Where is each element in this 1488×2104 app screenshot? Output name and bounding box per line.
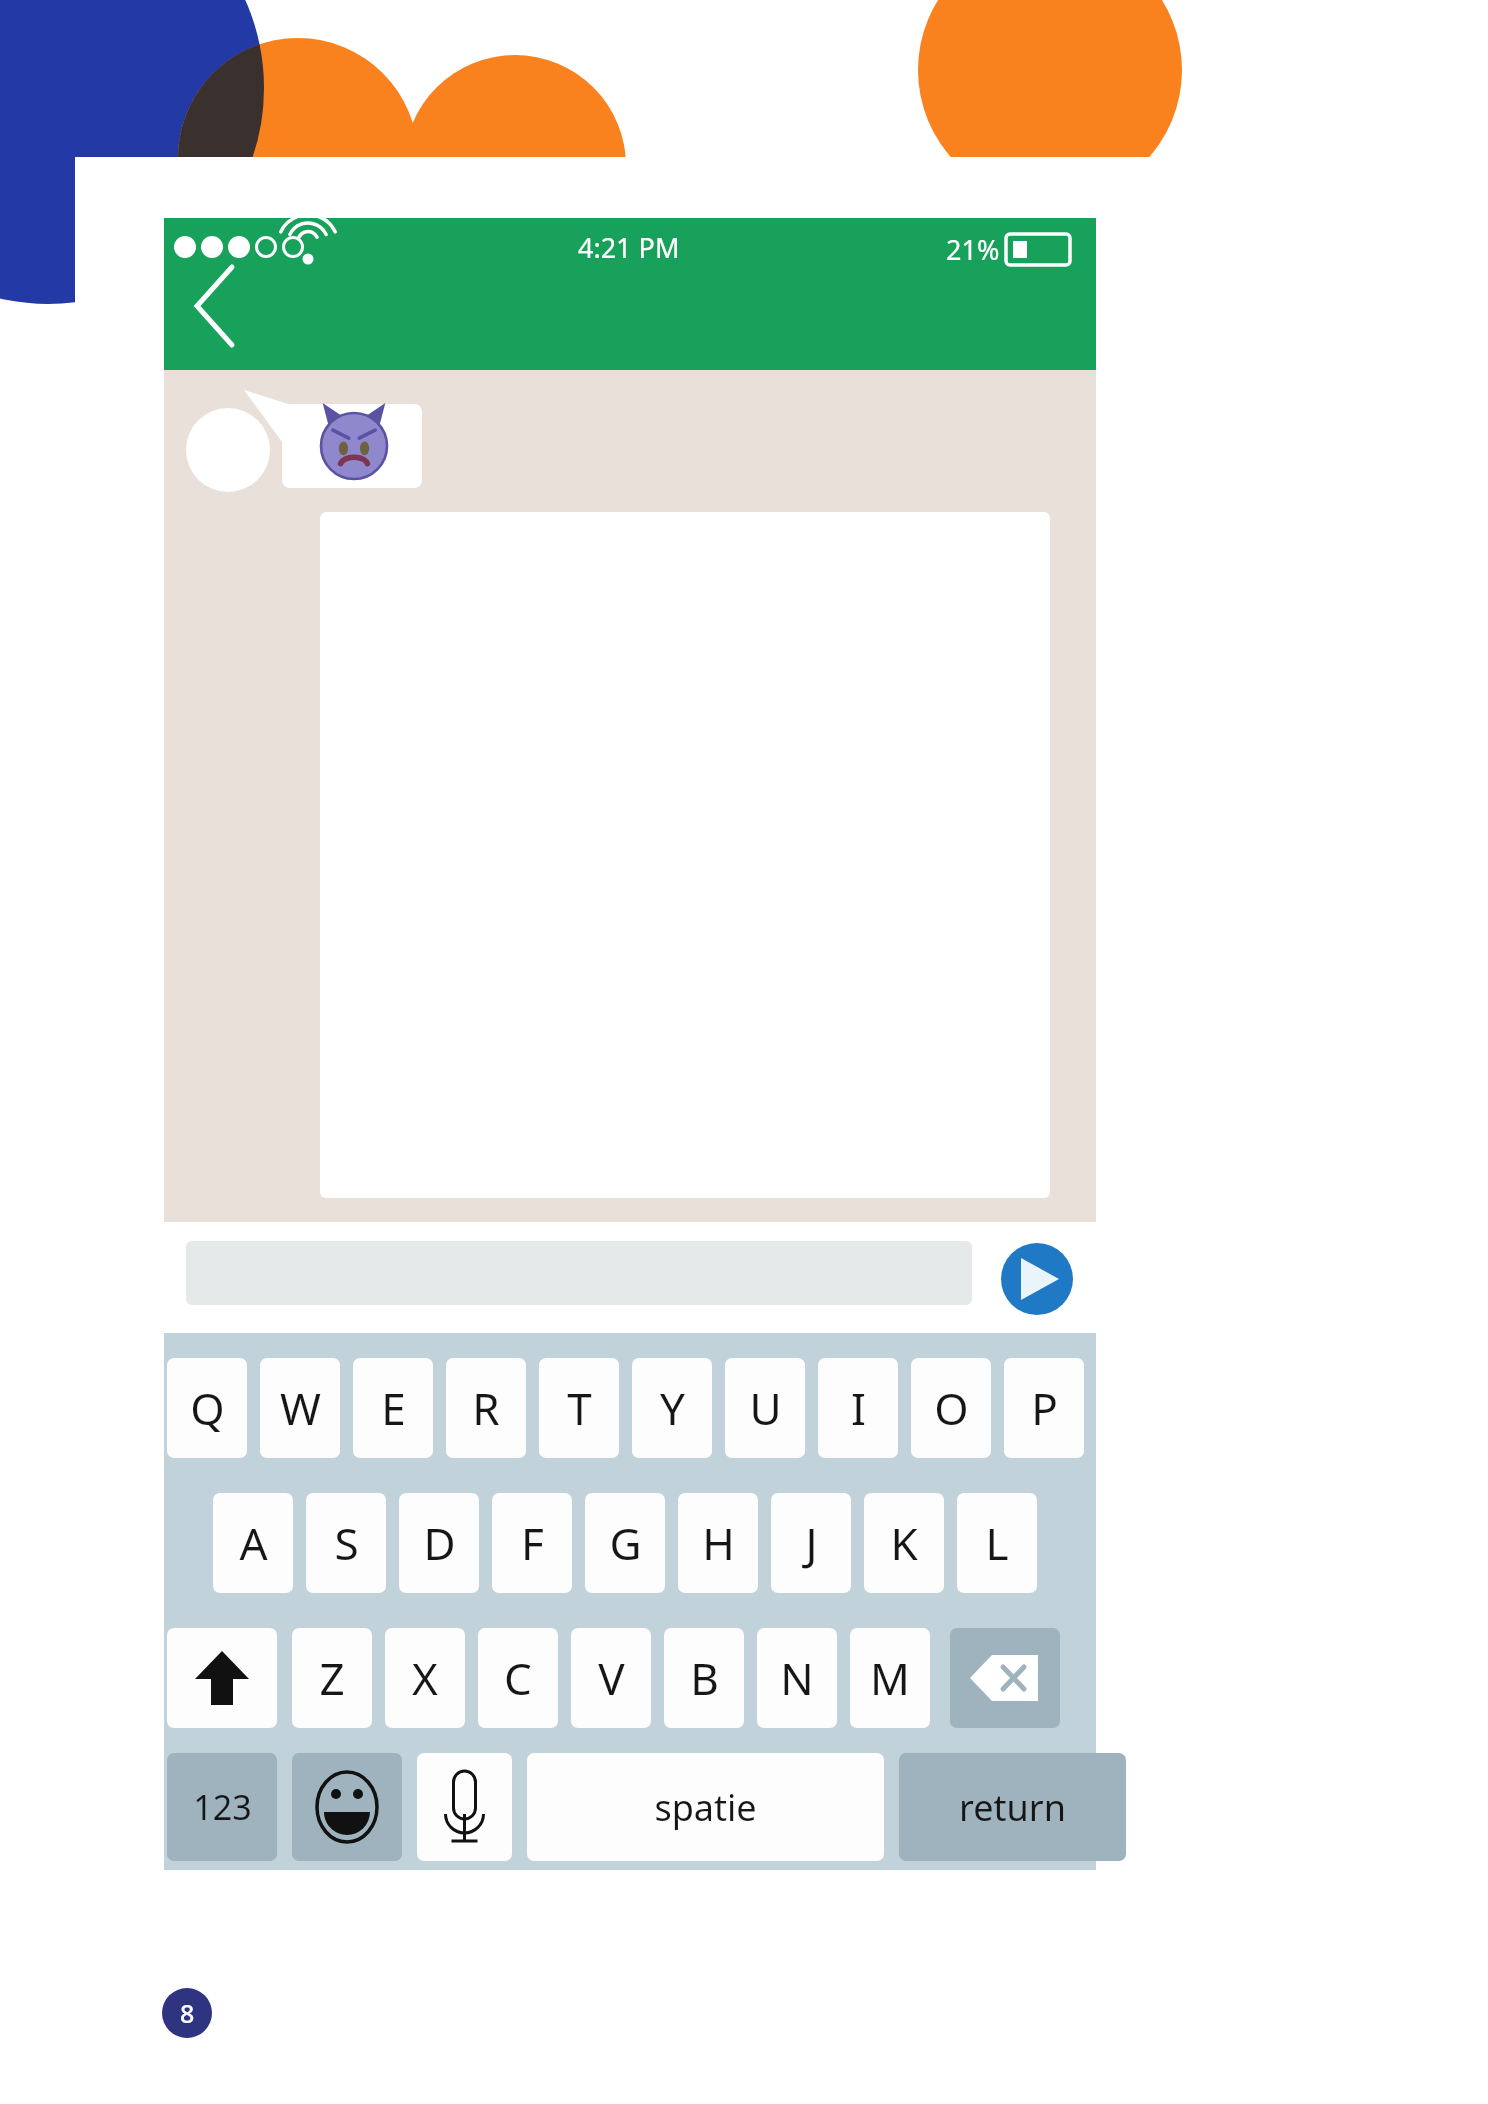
button[interactable]: return <box>899 1753 1126 1861</box>
staticText: P <box>1031 1378 1058 1438</box>
button[interactable]: 8 <box>162 1988 212 2038</box>
button[interactable]: Y <box>632 1358 712 1458</box>
button[interactable]: L <box>957 1493 1037 1593</box>
button[interactable]: Z <box>292 1628 372 1728</box>
button[interactable]: A <box>213 1493 293 1593</box>
staticText: C <box>504 1648 532 1708</box>
button[interactable]: N <box>757 1628 837 1728</box>
button[interactable]: C <box>478 1628 558 1728</box>
staticText: D <box>423 1513 456 1573</box>
staticText: 8 <box>180 1996 195 2030</box>
button[interactable]: U <box>725 1358 805 1458</box>
staticText: T <box>567 1378 592 1438</box>
button[interactable]: I <box>818 1358 898 1458</box>
button[interactable]: E <box>353 1358 433 1458</box>
staticText: 4:21 PM <box>578 229 680 266</box>
staticText: R <box>472 1378 500 1438</box>
staticText: L <box>985 1513 1009 1573</box>
button[interactable]: S <box>306 1493 386 1593</box>
button[interactable]: Q <box>167 1358 247 1458</box>
button[interactable]: 123 <box>167 1753 277 1861</box>
button[interactable]: D <box>399 1493 479 1593</box>
staticText: X <box>412 1648 438 1708</box>
button[interactable]: F <box>492 1493 572 1593</box>
staticText: Z <box>319 1648 345 1708</box>
button[interactable]: M <box>850 1628 930 1728</box>
button[interactable]: V <box>571 1628 651 1728</box>
button[interactable]: Voice input <box>417 1753 512 1861</box>
staticText: 21% <box>946 231 1000 268</box>
button[interactable]: H <box>678 1493 758 1593</box>
staticText: A <box>239 1513 268 1573</box>
staticText: G <box>609 1513 642 1573</box>
staticText: S <box>334 1513 359 1573</box>
staticText: K <box>890 1513 918 1573</box>
staticText: V <box>598 1648 625 1708</box>
staticText: J <box>805 1513 818 1573</box>
staticText: N <box>780 1648 814 1708</box>
staticText: E <box>381 1378 406 1438</box>
staticText: O <box>934 1378 969 1438</box>
staticText: F <box>521 1513 544 1573</box>
staticText: Y <box>660 1378 685 1438</box>
button[interactable]: J <box>771 1493 851 1593</box>
button[interactable]: Backspace <box>950 1628 1060 1728</box>
button[interactable]: B <box>664 1628 744 1728</box>
staticText: U <box>749 1378 782 1438</box>
button[interactable]: O <box>911 1358 991 1458</box>
button[interactable]: R <box>446 1358 526 1458</box>
button[interactable]: T <box>539 1358 619 1458</box>
button[interactable]: Shift <box>167 1628 277 1728</box>
button[interactable]: X <box>385 1628 465 1728</box>
staticText: return <box>959 1783 1066 1832</box>
button[interactable]: K <box>864 1493 944 1593</box>
staticText: H <box>702 1513 735 1573</box>
button[interactable]: P <box>1004 1358 1084 1458</box>
staticText: Q <box>190 1378 225 1438</box>
staticText: I <box>851 1378 866 1438</box>
button[interactable]: spatie <box>527 1753 884 1861</box>
staticText: spatie <box>654 1783 757 1832</box>
staticText: M <box>870 1648 910 1708</box>
button[interactable]: Back <box>166 262 252 348</box>
staticText: B <box>690 1648 719 1708</box>
staticText: 123 <box>193 1784 252 1830</box>
button[interactable]: W <box>260 1358 340 1458</box>
staticText: W <box>280 1378 321 1438</box>
button[interactable]: Send <box>1001 1243 1073 1315</box>
button[interactable]: G <box>585 1493 665 1593</box>
button[interactable]: Emoji <box>292 1753 402 1861</box>
